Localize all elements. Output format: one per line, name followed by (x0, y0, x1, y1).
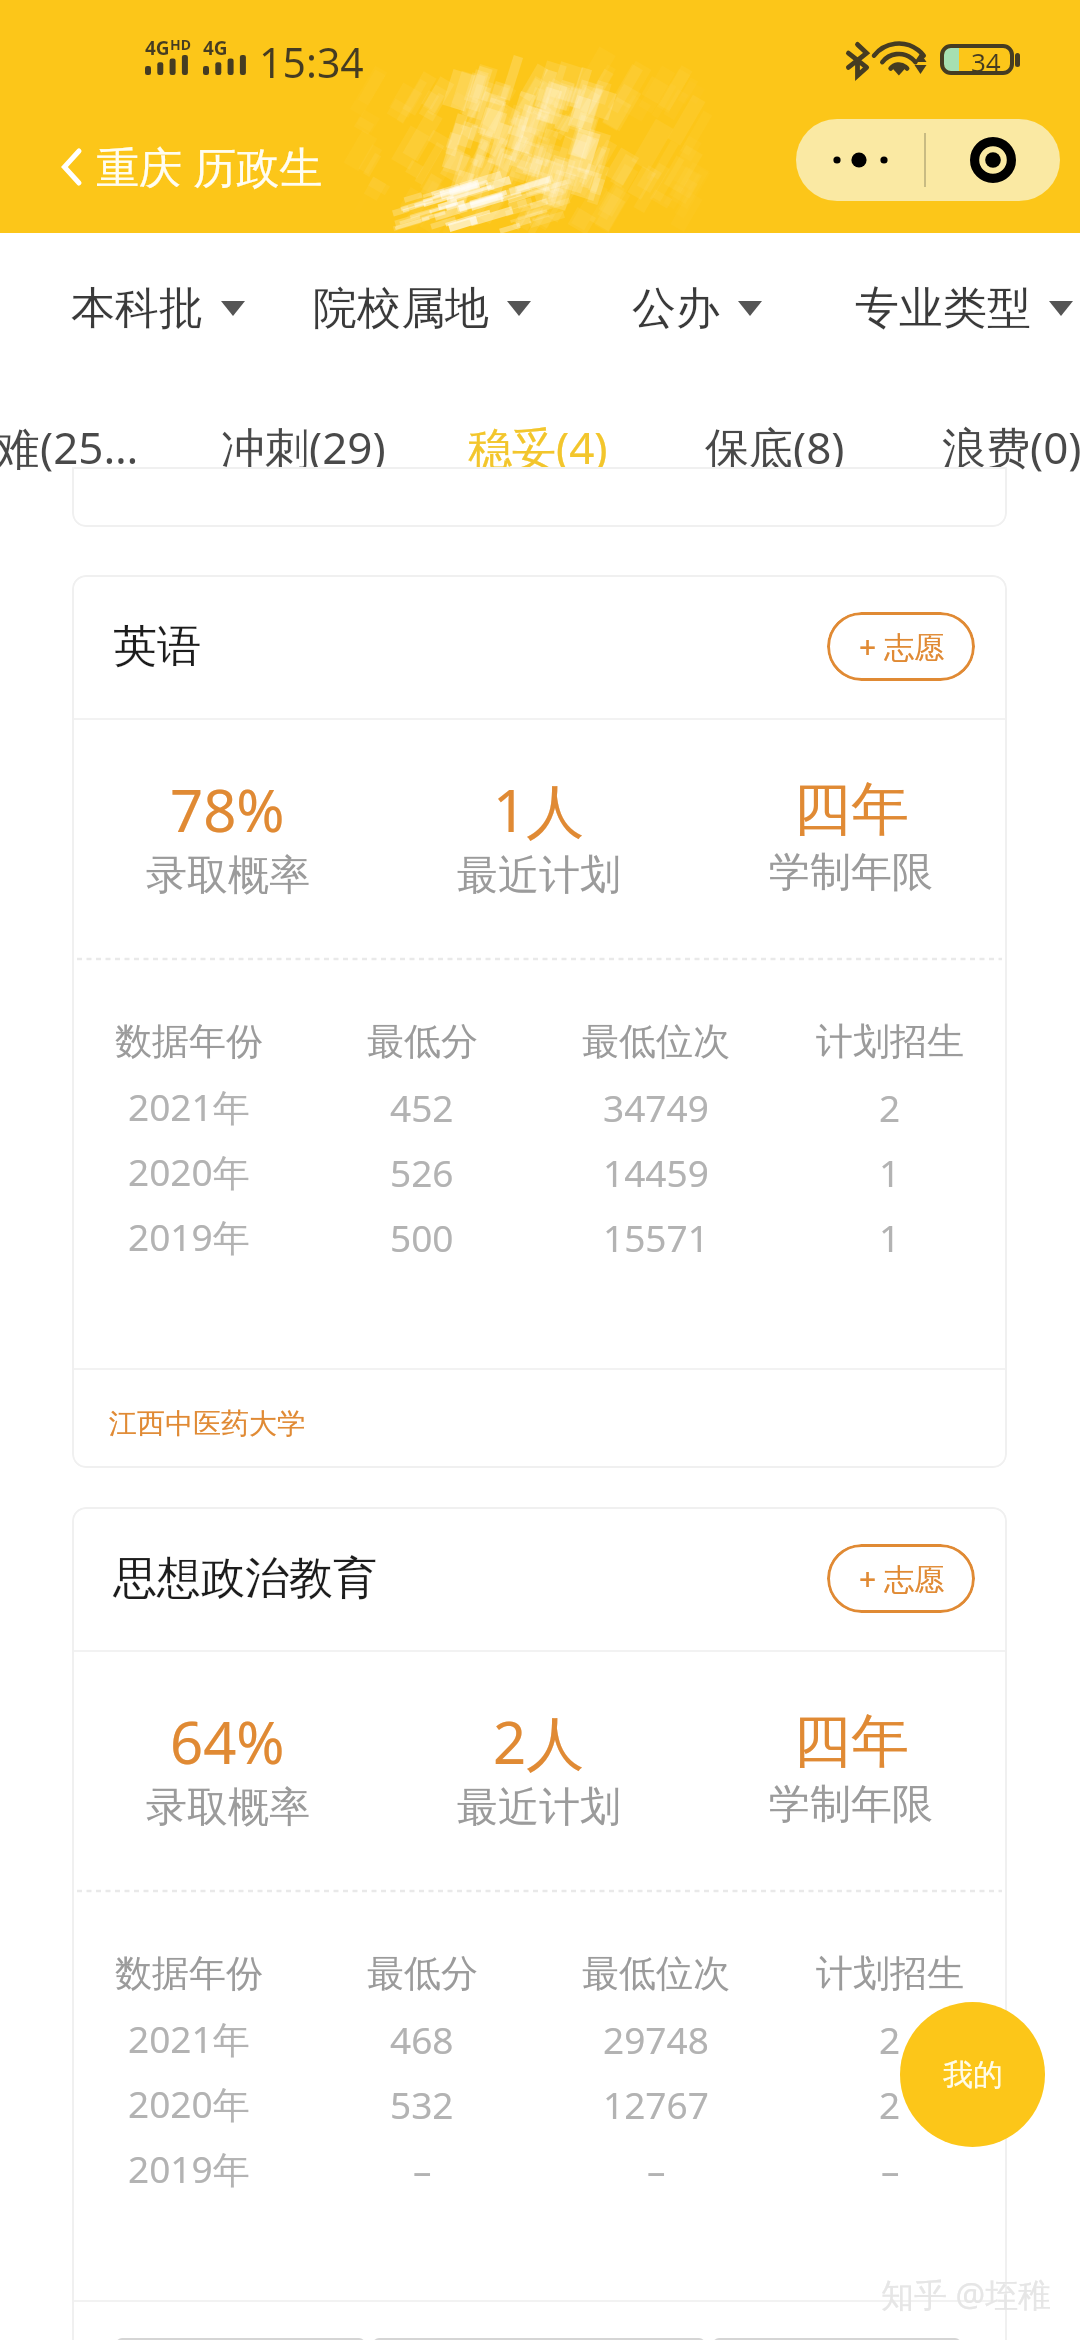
staticText: 难(25… (0, 417, 139, 477)
staticText: 15:34 (259, 34, 364, 90)
staticText: – (413, 2144, 432, 2194)
staticText: 重庆 历政生 (96, 137, 323, 196)
button[interactable]: + 志愿 (827, 1544, 975, 1613)
button[interactable]: 冲刺(29) (185, 383, 421, 511)
staticText: 专业类型 (855, 281, 1031, 336)
staticText: + 志愿 (859, 626, 944, 667)
button[interactable]: 浪费(0) (894, 383, 1080, 511)
staticText: 4G (145, 35, 170, 61)
button[interactable]: 公办 (632, 233, 762, 383)
staticText: – (881, 2144, 900, 2194)
staticText: 29748 (603, 2014, 709, 2064)
staticText: 学制年限 (769, 1779, 933, 1831)
staticText: 15571 (603, 1212, 709, 1262)
button[interactable]: 保底(8) (657, 383, 893, 511)
staticText: – (647, 2144, 666, 2194)
staticText: 英语 (113, 619, 201, 674)
staticText: 最近计划 (457, 850, 621, 902)
staticText: 532 (390, 2079, 454, 2129)
button[interactable]: 我的 (900, 2002, 1045, 2147)
button[interactable]: 思想政治教育 (72, 1507, 1007, 2340)
staticText: 34749 (603, 1082, 709, 1132)
staticText: 知乎 @垤稚 (881, 2272, 1052, 2317)
staticText: 2 (879, 2079, 901, 2129)
staticText: 500 (390, 1212, 454, 1262)
staticText: 重庆大学城市科技学院 (120, 2338, 365, 2340)
staticText: 2021年 (128, 1081, 250, 1132)
staticText: 稳妥(4) (468, 417, 608, 477)
staticText: 计划招生 (816, 1950, 964, 1997)
button[interactable]: 本科批 (71, 233, 245, 383)
staticText: 2020年 (128, 1146, 250, 1197)
staticText: 计划招生 (816, 1018, 964, 1065)
button[interactable]: 难(25… (0, 383, 185, 511)
staticText: 院校属地 (313, 281, 489, 336)
staticText: 最低位次 (582, 1950, 730, 1997)
staticText: 冲刺(29) (221, 417, 386, 477)
staticText: 录取概率 (146, 1782, 310, 1834)
staticText: 1人 (493, 770, 585, 849)
staticText: 78% (170, 770, 285, 849)
staticText: 2人 (493, 1702, 585, 1781)
button[interactable]: 院校属地 (313, 233, 531, 383)
staticText: 2019年 (128, 1211, 250, 1262)
staticText: + 志愿 (859, 1558, 944, 1599)
button[interactable] (713, 2338, 961, 2340)
button[interactable]: 重庆大学城市科技学院 (116, 2338, 365, 2340)
button[interactable]: 英语 (72, 575, 1007, 1468)
staticText: 1 (879, 1212, 901, 1262)
staticText: 526 (390, 1147, 454, 1197)
staticText: 最低位次 (582, 1018, 730, 1065)
staticText: 4G (203, 35, 228, 61)
staticText: 64% (170, 1702, 285, 1781)
staticText: 四年 (793, 1705, 909, 1778)
staticText: 2020年 (128, 2078, 250, 2129)
staticText: 最低分 (367, 1018, 478, 1065)
staticText: 2021年 (128, 2013, 250, 2064)
staticText: 录取概率 (146, 850, 310, 902)
staticText: 14459 (603, 1147, 709, 1197)
staticText: 数据年份 (115, 1018, 263, 1065)
staticText: 34 (971, 44, 1001, 75)
staticText: HD (170, 35, 191, 54)
staticText: 12767 (603, 2079, 709, 2129)
button[interactable]: + 志愿 (827, 612, 975, 681)
staticText: 江西中医药大学 (109, 1406, 305, 1441)
button[interactable]: Close mini program (926, 119, 1060, 201)
staticText: 学制年限 (769, 847, 933, 899)
staticText: 公办 (632, 281, 720, 336)
staticText: 452 (390, 1082, 454, 1132)
button[interactable]: Back (52, 100, 333, 233)
staticText: 思想政治教育 (113, 1551, 377, 1606)
staticText: 我的 (943, 2056, 1003, 2094)
staticText: 四年 (793, 773, 909, 846)
staticText: 2 (879, 1082, 901, 1132)
staticText: 468 (390, 2014, 454, 2064)
staticText: 保底(8) (705, 417, 845, 477)
staticText: 最近计划 (457, 1782, 621, 1834)
button[interactable]: More options (796, 119, 924, 201)
button[interactable]: 稳妥(4) (420, 383, 656, 511)
staticText: 2019年 (128, 2143, 250, 2194)
button[interactable]: 专业类型 (855, 233, 1073, 383)
staticText: 1 (879, 1147, 901, 1197)
staticText: 本科批 (71, 281, 203, 336)
button[interactable] (373, 2338, 705, 2340)
staticText: 最低分 (367, 1950, 478, 1997)
staticText: 2 (879, 2014, 901, 2064)
staticText: 数据年份 (115, 1950, 263, 1997)
staticText: 浪费(0) (942, 417, 1080, 477)
